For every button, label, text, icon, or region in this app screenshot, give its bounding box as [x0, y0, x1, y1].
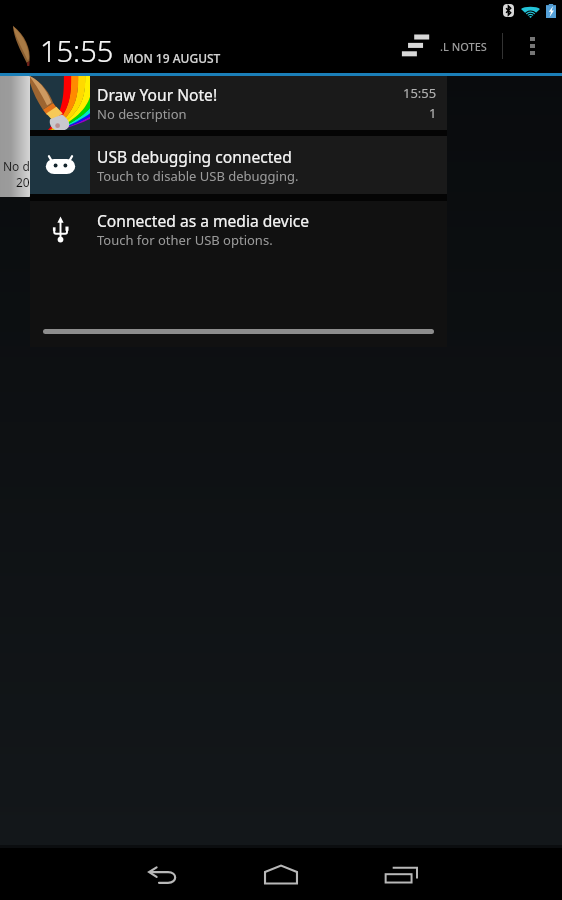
- staticText: No d: [3, 158, 30, 174]
- button[interactable]: .L NOTES: [401, 30, 487, 62]
- button[interactable]: Recents: [341, 848, 461, 900]
- button[interactable]: USB debugging connected: [30, 136, 447, 194]
- staticText: Connected as a media device: [97, 210, 310, 231]
- staticText: Draw Your Note!: [97, 84, 218, 105]
- staticText: 15:55: [403, 84, 437, 102]
- staticText: No description: [97, 105, 187, 123]
- button[interactable]: Home: [221, 848, 341, 900]
- staticText: .L NOTES: [440, 39, 487, 54]
- button[interactable]: More options: [512, 27, 552, 65]
- staticText: MON 19 AUGUST: [123, 50, 221, 66]
- staticText: Touch to disable USB debugging.: [97, 167, 299, 185]
- staticText: USB debugging connected: [97, 146, 292, 167]
- button[interactable]: Back: [102, 848, 222, 900]
- staticText: 15:55: [40, 31, 114, 70]
- staticText: 20: [16, 174, 30, 190]
- button[interactable]: Connected as a media device: [30, 201, 447, 258]
- button[interactable]: Draw Your Note!: [30, 76, 447, 130]
- button[interactable]: Drag handle: [30, 320, 447, 347]
- staticText: Touch for other USB options.: [97, 231, 273, 249]
- staticText: 1: [429, 104, 437, 122]
